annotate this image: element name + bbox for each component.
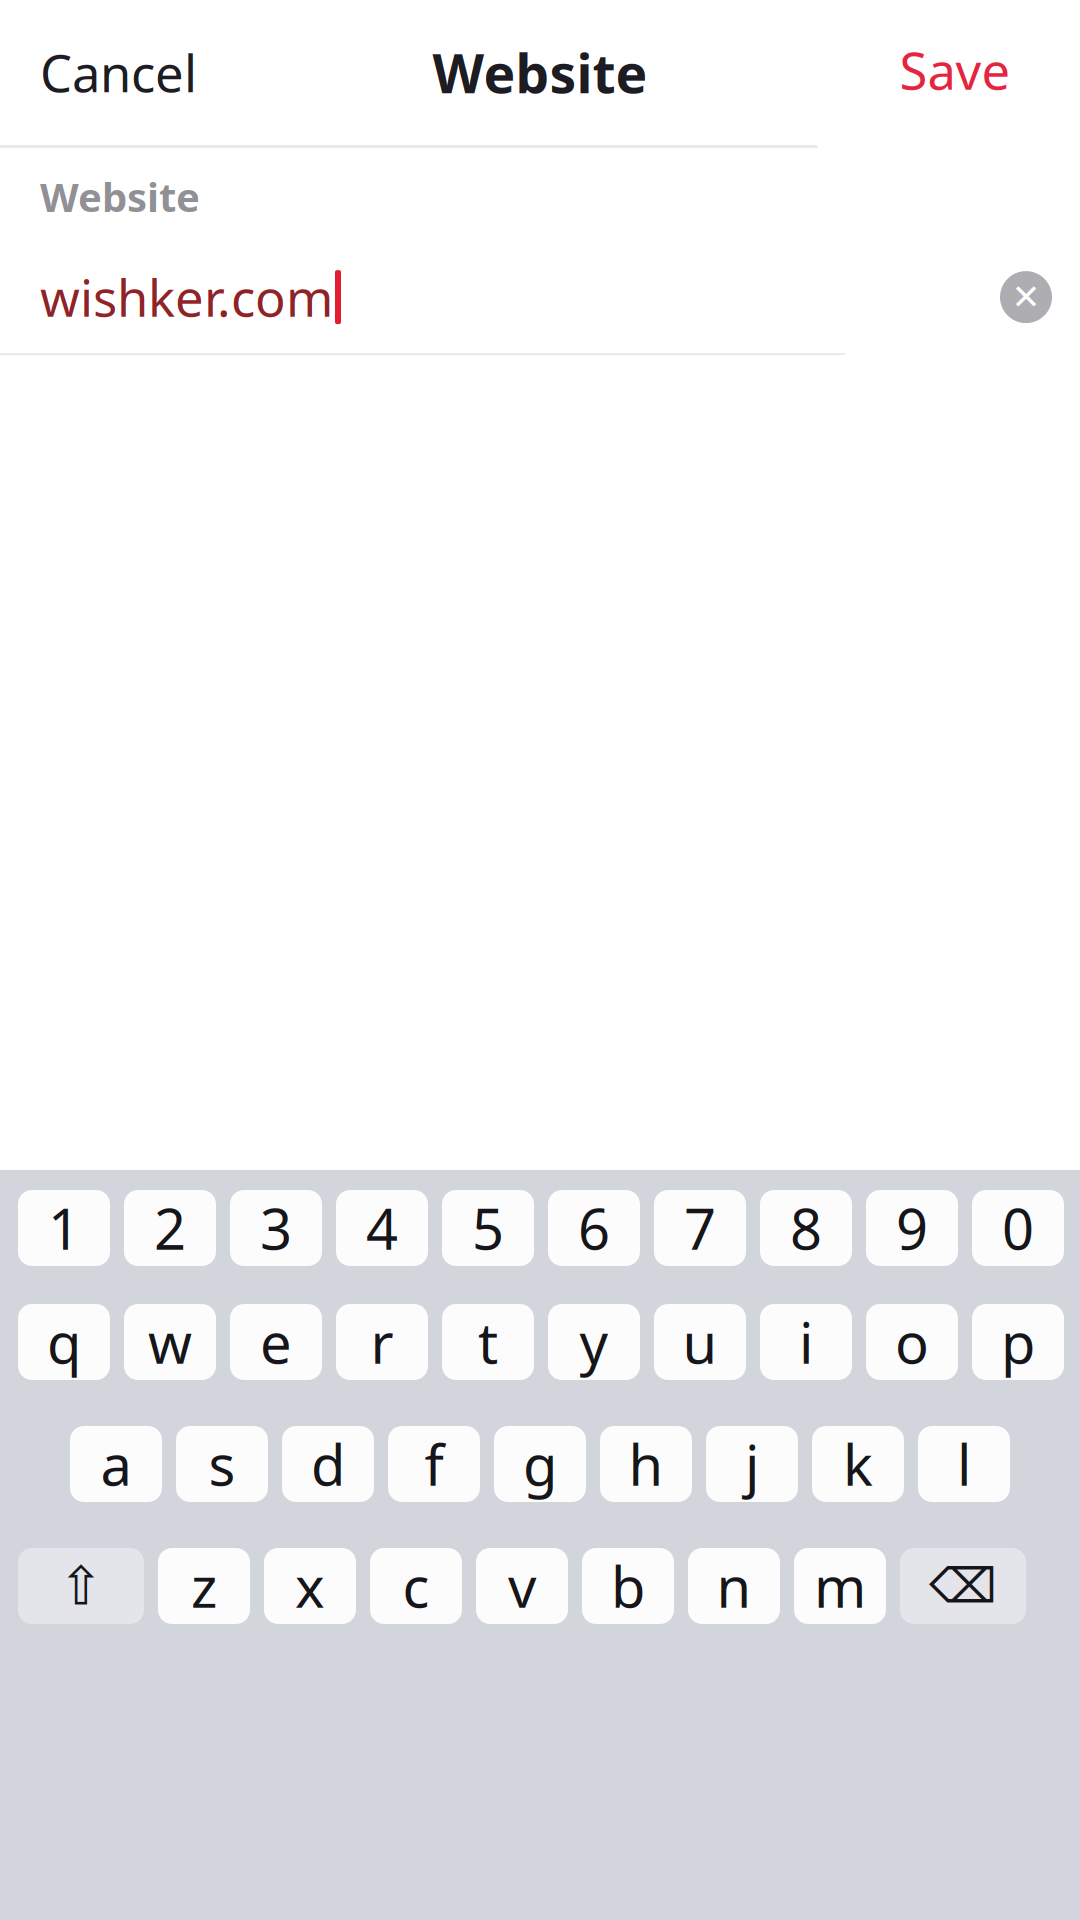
button[interactable]: w [124,1304,216,1380]
staticText: j [745,1427,759,1501]
button[interactable]: Save [885,0,1080,145]
button[interactable]: 5 [442,1190,534,1266]
button[interactable]: c [370,1548,462,1624]
button[interactable]: 4 [336,1190,428,1266]
staticText: f [424,1427,443,1501]
staticText: p [1001,1305,1035,1379]
staticText: l [957,1427,971,1501]
staticText: n [716,1549,751,1623]
button[interactable]: s [176,1426,268,1502]
button[interactable]: 2 [124,1190,216,1266]
button[interactable]: r [336,1304,428,1380]
staticText: u [682,1305,717,1379]
staticText: r [370,1305,393,1379]
button[interactable]: d [282,1426,374,1502]
button[interactable]: e [230,1304,322,1380]
staticText: 1 [48,1191,80,1265]
staticText: z [191,1549,217,1623]
staticText: Website [432,37,647,108]
staticText: e [260,1305,292,1379]
button[interactable]: v [476,1548,568,1624]
staticText: x [295,1549,325,1623]
button[interactable]: l [918,1426,1010,1502]
button[interactable]: o [866,1304,958,1380]
button[interactable]: y [548,1304,640,1380]
staticText: c [402,1549,429,1623]
button[interactable]: m [794,1548,886,1624]
staticText: Cancel [40,39,197,106]
button[interactable]: u [654,1304,746,1380]
button[interactable]: q [18,1304,110,1380]
button[interactable]: t [442,1304,534,1380]
staticText: 4 [366,1191,398,1265]
button[interactable]: 1 [18,1190,110,1266]
staticText: ⇧ [58,1556,103,1616]
button[interactable]: p [972,1304,1064,1380]
staticText: 9 [896,1191,928,1265]
button[interactable]: n [688,1548,780,1624]
button[interactable]: 7 [654,1190,746,1266]
staticText: 3 [260,1191,292,1265]
button[interactable]: j [706,1426,798,1502]
staticText: o [895,1305,929,1379]
button[interactable]: 8 [760,1190,852,1266]
button[interactable]: Delete [900,1548,1026,1624]
button[interactable]: Shift [18,1548,144,1624]
staticText: i [799,1305,813,1379]
staticText: ⌫ [929,1559,997,1613]
staticText: v [508,1549,536,1623]
staticText: k [843,1427,873,1501]
button[interactable]: i [760,1304,852,1380]
button[interactable]: k [812,1426,904,1502]
staticText: g [523,1427,557,1501]
staticText: ✕ [1011,277,1040,317]
staticText: h [628,1427,663,1501]
staticText: q [47,1305,81,1379]
staticText: m [814,1549,866,1623]
staticText: 7 [684,1191,716,1265]
button[interactable]: Clear text [1000,271,1080,323]
button[interactable]: 3 [230,1190,322,1266]
staticText: 2 [154,1191,186,1265]
button[interactable]: x [264,1548,356,1624]
button[interactable]: b [582,1548,674,1624]
button[interactable]: h [600,1426,692,1502]
staticText: b [611,1549,645,1623]
staticText: 6 [578,1191,610,1265]
staticText: y [579,1305,608,1379]
button[interactable]: 0 [972,1190,1064,1266]
staticText: d [311,1427,345,1501]
button[interactable]: f [388,1426,480,1502]
staticText: 0 [1002,1191,1034,1265]
button[interactable]: z [158,1548,250,1624]
staticText: Save [927,39,1038,106]
staticText: 5 [472,1191,504,1265]
staticText: 8 [790,1191,822,1265]
staticText: t [478,1305,498,1379]
button[interactable]: g [494,1426,586,1502]
staticText: a [100,1427,131,1501]
button[interactable]: a [70,1426,162,1502]
staticText: wishker.com [40,263,333,331]
button[interactable]: Cancel [0,0,237,145]
staticText: w [148,1305,192,1379]
staticText: Save [899,36,1010,104]
button[interactable]: 6 [548,1190,640,1266]
staticText: Website [40,170,200,223]
staticText: s [208,1427,235,1501]
button[interactable]: 9 [866,1190,958,1266]
